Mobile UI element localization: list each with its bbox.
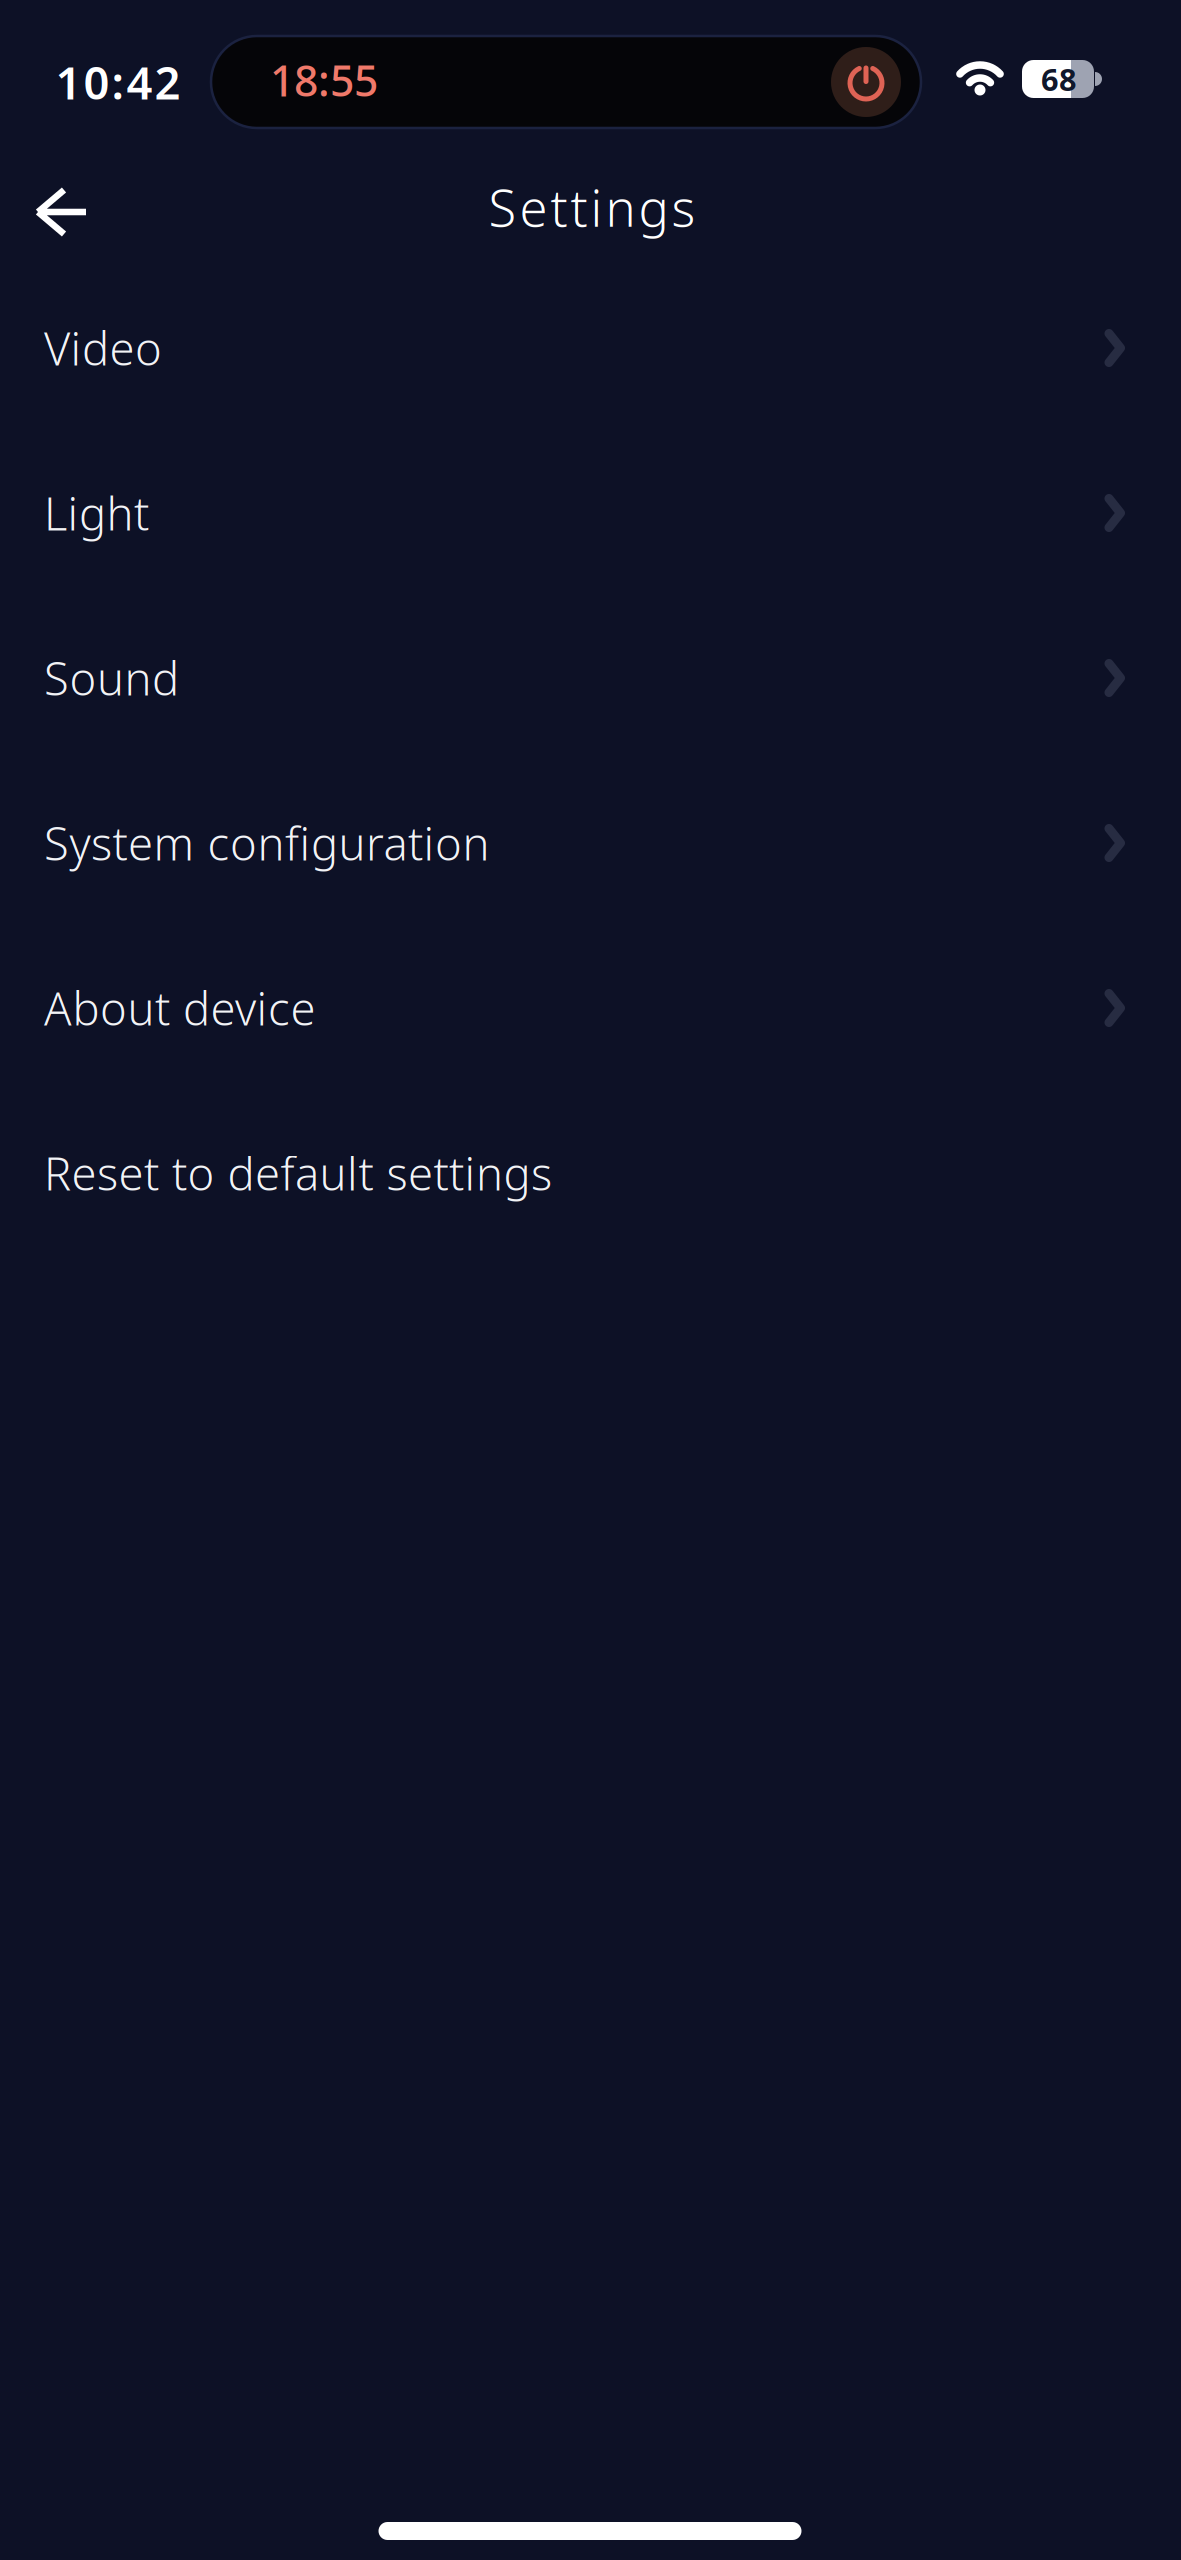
staticText: 68 (1041, 59, 1077, 99)
staticText: About device (44, 978, 315, 1038)
staticText: Reset to default settings (44, 1143, 552, 1203)
staticText: 10:42 (55, 52, 180, 112)
button[interactable]: System configuration (0, 773, 1181, 913)
button[interactable]: About device (0, 938, 1181, 1078)
staticText: Sound (44, 648, 179, 708)
staticText: Light (44, 483, 149, 543)
staticText: System configuration (44, 813, 489, 873)
button[interactable]: Power (831, 47, 901, 117)
staticText: Video (44, 318, 162, 378)
staticText: Settings (488, 173, 695, 241)
button[interactable]: Video (0, 278, 1181, 418)
staticText: 18:55 (270, 52, 378, 108)
button[interactable]: Reset to default settings (0, 1103, 1181, 1243)
button[interactable]: Light (0, 443, 1181, 583)
button[interactable]: Sound (0, 608, 1181, 748)
button[interactable]: Back (17, 172, 107, 252)
